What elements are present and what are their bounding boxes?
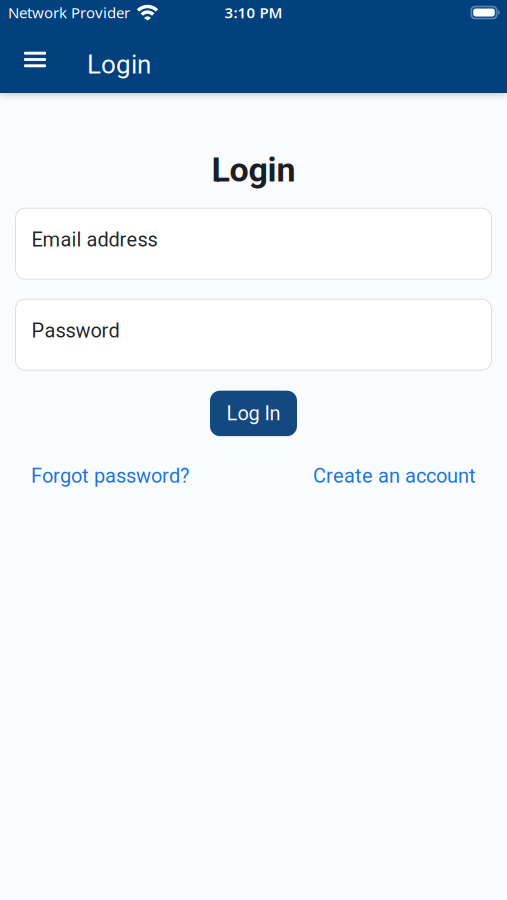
button[interactable]: Forgot password? [31,464,189,487]
staticText: Login [87,49,151,80]
staticText: Forgot password? [31,464,189,487]
staticText: Email address [31,228,157,251]
staticText: Password [31,319,119,342]
staticText: Login [211,150,295,190]
button[interactable]: Log In [210,391,297,436]
staticText: Log In [226,402,280,425]
button[interactable]: Email address [15,208,491,279]
button[interactable]: Create an account [313,464,476,487]
staticText: 3:10 PM [224,2,282,23]
button[interactable]: Menu [0,52,46,69]
button[interactable]: Password [15,299,491,370]
staticText: Create an account [313,464,476,487]
button[interactable]: Login [46,41,151,80]
staticText: Network Provider [8,2,130,23]
